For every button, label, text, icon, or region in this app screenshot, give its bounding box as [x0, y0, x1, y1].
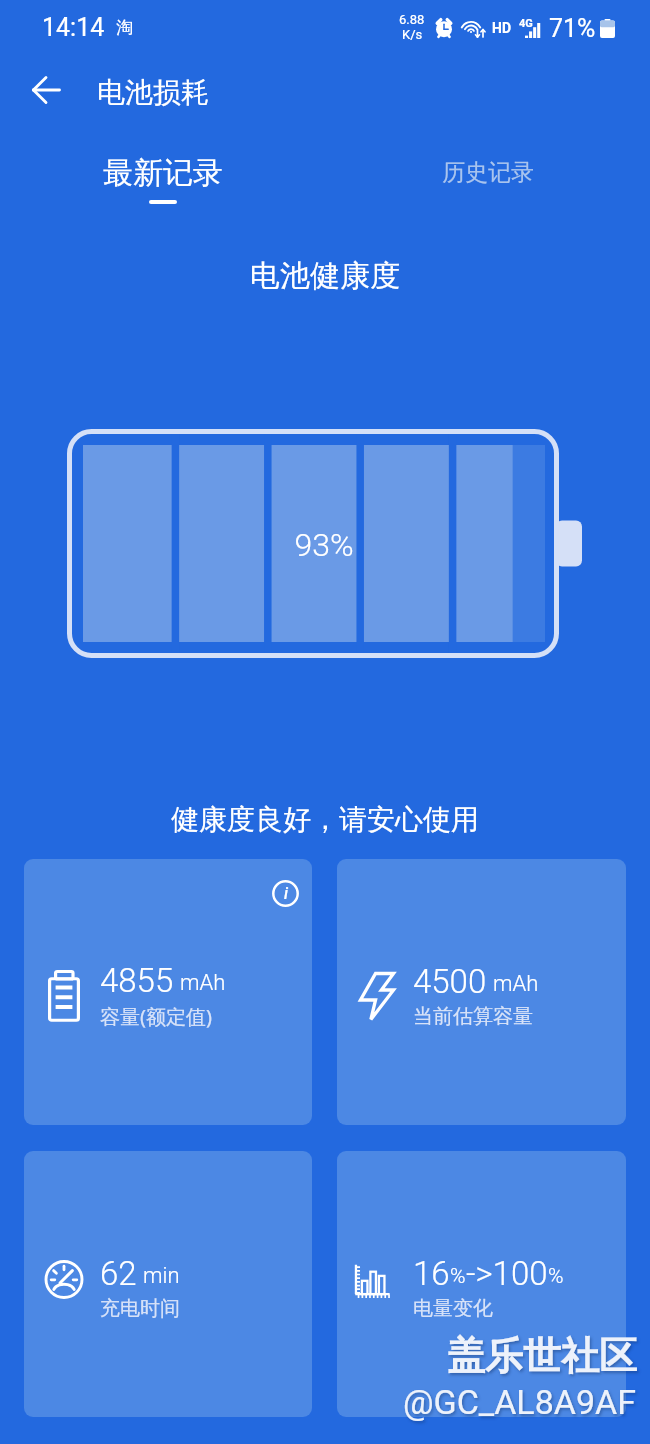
staticText: 盖乐世社区: [447, 1332, 637, 1380]
staticText: 4855: [100, 961, 174, 1000]
button[interactable]: 4500: [337, 859, 626, 1125]
staticText: 电池健康度: [0, 257, 650, 295]
staticText: 当前估算容量: [413, 1004, 533, 1029]
staticText: 4G: [519, 17, 533, 30]
staticText: 62: [100, 1254, 137, 1293]
staticText: %: [548, 1264, 564, 1289]
button[interactable]: 62: [24, 1151, 312, 1417]
staticText: 电量变化: [413, 1296, 493, 1321]
button[interactable]: Info: [272, 880, 299, 907]
staticText: mAh: [180, 970, 226, 996]
staticText: 6.88: [399, 12, 425, 27]
staticText: min: [143, 1263, 180, 1289]
staticText: 淘: [116, 17, 133, 38]
staticText: 16: [413, 1254, 450, 1293]
staticText: 4500: [413, 962, 487, 1001]
staticText: mAh: [493, 971, 539, 997]
staticText: K/s: [402, 27, 423, 42]
staticText: 健康度良好，请安心使用: [0, 802, 650, 837]
button[interactable]: Info: [24, 859, 312, 1125]
staticText: 历史记录: [442, 158, 534, 187]
button[interactable]: 最新记录: [0, 128, 325, 218]
staticText: 容量(额定值): [100, 1003, 212, 1030]
staticText: @GC_AL8A9AF: [403, 1382, 637, 1422]
staticText: ->100: [466, 1254, 548, 1293]
staticText: %: [450, 1264, 466, 1289]
staticText: 电池损耗: [97, 75, 209, 110]
staticText: 93%: [0, 526, 649, 564]
staticText: 14:14: [42, 13, 105, 42]
staticText: 充电时间: [100, 1296, 180, 1321]
staticText: HD: [492, 20, 511, 36]
button[interactable]: Back: [13, 59, 79, 125]
staticText: 71%: [549, 14, 596, 43]
staticText: 最新记录: [103, 154, 223, 192]
button[interactable]: 16: [337, 1151, 626, 1417]
button[interactable]: 历史记录: [325, 128, 650, 218]
staticText: i: [284, 884, 288, 903]
